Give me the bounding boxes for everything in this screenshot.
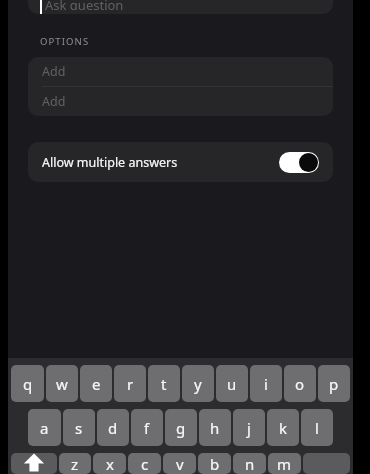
staticText: j xyxy=(247,418,251,438)
staticText: e xyxy=(92,374,101,394)
staticText: b xyxy=(210,454,220,474)
button[interactable]: x xyxy=(93,453,126,474)
button[interactable]: k xyxy=(267,409,299,446)
staticText: f xyxy=(144,418,150,438)
button[interactable]: Backspace xyxy=(303,453,350,474)
button[interactable]: Ask question xyxy=(28,0,333,14)
button[interactable]: b xyxy=(198,453,231,474)
staticText: m xyxy=(277,454,292,474)
button[interactable]: h xyxy=(199,409,231,446)
button[interactable]: a xyxy=(28,409,61,446)
button[interactable]: r xyxy=(114,365,146,402)
staticText: Allow multiple answers xyxy=(42,154,178,171)
button[interactable]: d xyxy=(97,409,129,446)
staticText: t xyxy=(161,374,167,394)
button[interactable]: f xyxy=(131,409,163,446)
button[interactable]: p xyxy=(318,365,350,402)
staticText: w xyxy=(56,374,68,394)
button[interactable]: Shift xyxy=(11,453,57,474)
button[interactable]: u xyxy=(216,365,248,402)
staticText: Add xyxy=(42,93,66,110)
staticText: i xyxy=(264,374,268,394)
staticText: s xyxy=(75,418,83,438)
button[interactable]: o xyxy=(284,365,316,402)
staticText: x xyxy=(106,454,114,474)
button[interactable]: e xyxy=(80,365,112,402)
staticText: u xyxy=(227,374,237,394)
button[interactable]: m xyxy=(268,453,301,474)
button[interactable]: Add xyxy=(28,87,333,116)
button[interactable]: t xyxy=(148,365,180,402)
button[interactable]: g xyxy=(165,409,197,446)
staticText: z xyxy=(71,454,79,474)
staticText: v xyxy=(176,454,184,474)
staticText: y xyxy=(194,374,202,394)
staticText: n xyxy=(245,454,255,474)
staticText: Ask question xyxy=(45,0,124,10)
staticText: d xyxy=(108,418,118,438)
button[interactable]: y xyxy=(182,365,214,402)
button[interactable]: l xyxy=(301,409,333,446)
button[interactable]: Allow multiple answers toggle xyxy=(279,152,319,173)
staticText: Add xyxy=(42,63,66,80)
staticText: r xyxy=(127,374,134,394)
staticText: k xyxy=(279,418,288,438)
staticText: h xyxy=(210,418,220,438)
staticText: q xyxy=(23,374,33,394)
button[interactable]: i xyxy=(250,365,282,402)
staticText: p xyxy=(329,374,339,394)
staticText: c xyxy=(141,454,149,474)
button[interactable]: Add xyxy=(28,57,333,86)
button[interactable]: n xyxy=(233,453,266,474)
button[interactable]: q xyxy=(11,365,44,402)
staticText: OPTIONS xyxy=(40,35,90,48)
button[interactable]: j xyxy=(233,409,265,446)
button[interactable]: s xyxy=(63,409,95,446)
button[interactable]: w xyxy=(46,365,78,402)
button[interactable]: Allow multiple answers xyxy=(28,142,333,182)
staticText: o xyxy=(295,374,305,394)
staticText: a xyxy=(40,418,49,438)
button[interactable]: z xyxy=(59,453,91,474)
staticText: l xyxy=(315,418,319,438)
button[interactable]: c xyxy=(128,453,161,474)
staticText: g xyxy=(176,418,186,438)
button[interactable]: v xyxy=(163,453,196,474)
